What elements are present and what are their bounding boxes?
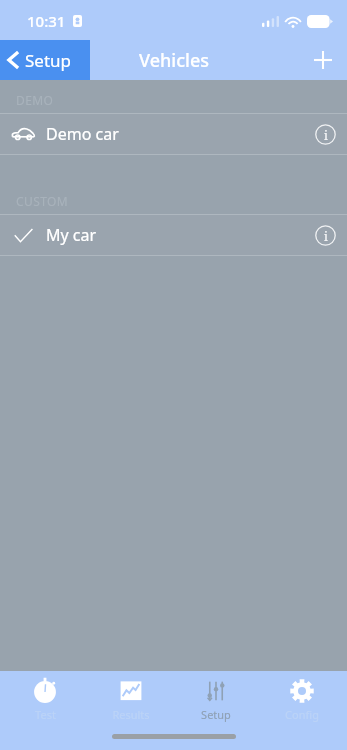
staticText: i xyxy=(324,127,328,143)
staticText: Setup xyxy=(201,707,231,722)
staticText: CUSTOM xyxy=(16,193,69,209)
button[interactable]: Add vehicle xyxy=(299,40,347,80)
staticText: Demo car xyxy=(46,123,119,145)
staticText: Setup xyxy=(25,49,72,72)
button[interactable]: Test xyxy=(5,678,85,722)
staticText: Results xyxy=(112,707,150,722)
button[interactable]: Setup xyxy=(0,40,90,80)
staticText: Config xyxy=(285,707,319,722)
staticText: DEMO xyxy=(16,92,54,108)
button[interactable]: More info about My car xyxy=(303,215,347,255)
button[interactable]: Results xyxy=(91,678,171,722)
staticText: My car xyxy=(46,224,97,246)
button[interactable]: My car xyxy=(0,215,347,255)
button[interactable]: Setup xyxy=(176,678,256,722)
button[interactable]: Demo car xyxy=(0,114,347,154)
button[interactable]: More info about Demo car xyxy=(303,114,347,154)
staticText: Test xyxy=(35,707,56,722)
staticText: i xyxy=(324,228,328,244)
button[interactable]: Config xyxy=(262,678,342,722)
staticText: Vehicles xyxy=(139,48,209,73)
staticText: 10:31 xyxy=(27,11,66,31)
